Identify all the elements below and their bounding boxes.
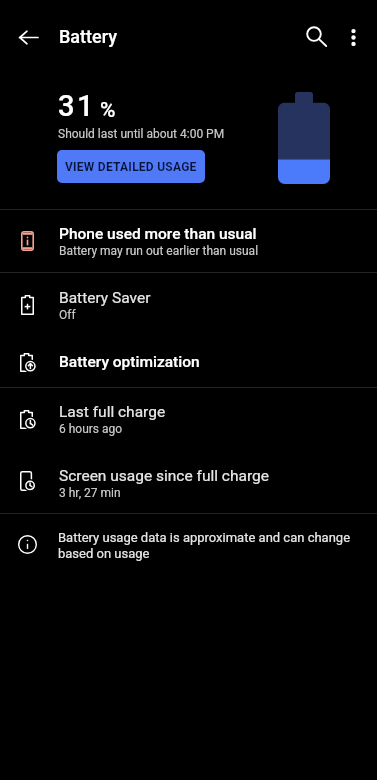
button[interactable]: Search (293, 13, 341, 61)
button[interactable]: Battery usage data is approximate and ca… (0, 514, 377, 578)
staticText: Battery optimization (59, 353, 200, 371)
staticText: Should last until about 4:00 PM (58, 127, 225, 141)
staticText: Battery Saver (59, 289, 151, 307)
button[interactable]: Last full charge (0, 388, 377, 450)
button[interactable]: VIEW DETAILED USAGE (57, 150, 205, 183)
staticText: Phone used more than usual (59, 225, 257, 243)
button[interactable]: Back (4, 13, 52, 61)
staticText: Battery may run out earlier than usual (59, 244, 259, 258)
staticText: VIEW DETAILED USAGE (65, 160, 197, 174)
button[interactable]: Phone used more than usual (0, 210, 377, 272)
staticText: Last full charge (59, 403, 166, 421)
button[interactable]: Battery Saver (0, 276, 377, 334)
staticText: 6 hours ago (59, 422, 123, 436)
staticText: Battery (59, 26, 118, 47)
staticText: 31 (58, 89, 96, 123)
button[interactable]: Battery optimization (0, 334, 377, 390)
staticText: Off (59, 308, 76, 322)
button[interactable]: Screen usage since full charge (0, 452, 377, 515)
button[interactable]: More options (331, 15, 376, 60)
staticText: Screen usage since full charge (59, 467, 269, 485)
staticText: Battery usage data is approximate and ca… (58, 530, 351, 561)
staticText: % (100, 98, 116, 123)
staticText: 3 hr, 27 min (59, 486, 121, 500)
